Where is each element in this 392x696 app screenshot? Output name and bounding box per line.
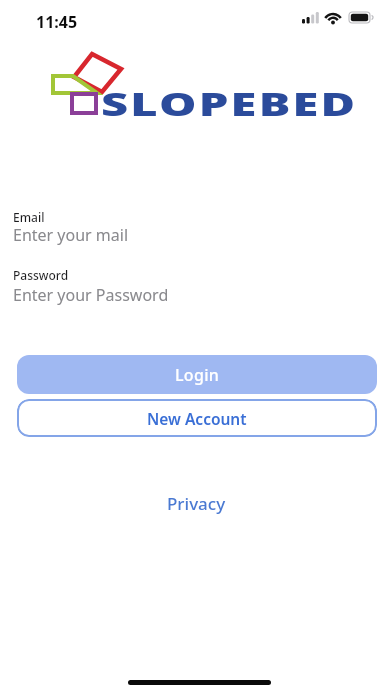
button[interactable]: Enter your Password: [0, 284, 392, 308]
staticText: New Account: [147, 408, 247, 429]
staticText: 11:45: [36, 11, 78, 33]
staticText: Enter your mail: [13, 224, 129, 246]
button[interactable]: Enter your mail: [0, 224, 392, 248]
button[interactable]: Privacy: [0, 490, 392, 516]
staticText: Login: [175, 364, 220, 386]
staticText: Password: [13, 267, 69, 283]
button[interactable]: Login: [17, 355, 377, 394]
staticText: Enter your Password: [13, 284, 169, 306]
button[interactable]: New Account: [17, 399, 377, 437]
staticText: Privacy: [167, 492, 226, 515]
staticText: Email: [13, 209, 45, 225]
staticText: SLOPEBED: [101, 82, 358, 126]
